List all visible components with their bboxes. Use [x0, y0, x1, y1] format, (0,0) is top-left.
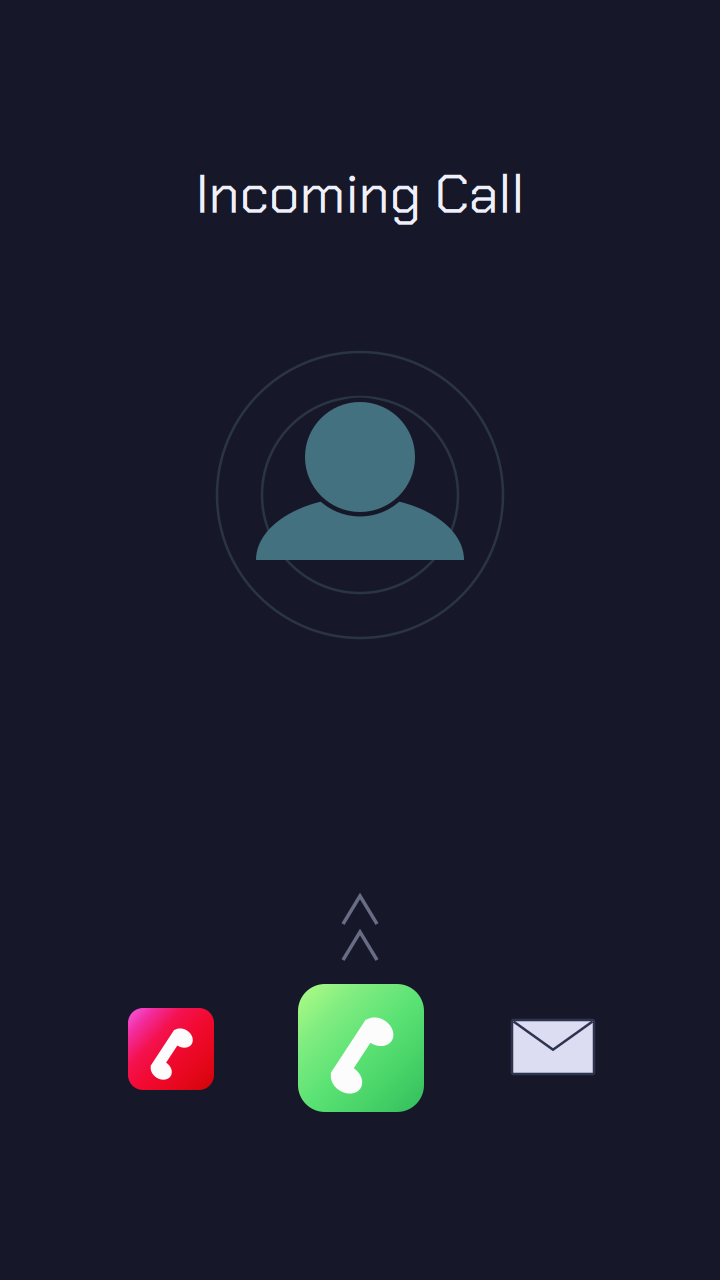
button[interactable]: Send message [512, 1020, 594, 1074]
button[interactable]: Accept call [298, 984, 424, 1112]
staticText: Incoming Call [195, 158, 524, 230]
button[interactable]: Decline call [128, 1008, 214, 1090]
